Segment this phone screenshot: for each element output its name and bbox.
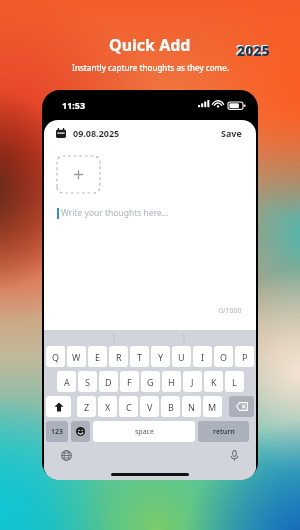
staticText: 2025: [237, 41, 270, 60]
staticText: Save: [221, 127, 242, 139]
staticText: 11:53: [62, 99, 86, 111]
staticText: U: [178, 351, 185, 363]
staticText: C: [126, 401, 132, 413]
button[interactable]: G: [141, 371, 160, 392]
button[interactable]: 2025: [236, 40, 269, 59]
button[interactable]: space: [93, 421, 195, 442]
button[interactable]: Dictate: [226, 447, 242, 463]
staticText: T: [137, 351, 143, 363]
staticText: B: [168, 401, 174, 413]
button[interactable]: N: [182, 396, 201, 417]
button[interactable]: W: [67, 346, 86, 367]
button[interactable]: I: [193, 346, 212, 367]
staticText: F: [127, 376, 132, 388]
button[interactable]: U: [172, 346, 191, 367]
staticText: Y: [158, 351, 164, 363]
staticText: P: [242, 351, 248, 363]
button[interactable]: T: [130, 346, 149, 367]
button[interactable]: Write your thoughts here...: [57, 207, 256, 219]
button[interactable]: M: [203, 396, 222, 417]
button[interactable]: L: [225, 371, 244, 392]
staticText: G: [147, 376, 154, 388]
staticText: return: [213, 427, 235, 437]
staticText: X: [105, 401, 111, 413]
staticText: L: [232, 376, 237, 388]
button[interactable]: J: [183, 371, 202, 392]
button[interactable]: F: [120, 371, 139, 392]
staticText: 2025: [236, 40, 269, 59]
button[interactable]: 123: [46, 421, 68, 442]
button[interactable]: V: [140, 396, 159, 417]
staticText: 123: [51, 427, 64, 437]
staticText: R: [116, 351, 122, 363]
staticText: M: [208, 401, 217, 413]
button[interactable]: Y: [151, 346, 170, 367]
staticText: 09.08.2025: [73, 127, 120, 139]
button[interactable]: D: [99, 371, 118, 392]
button[interactable]: O: [214, 346, 233, 367]
button[interactable]: B: [161, 396, 180, 417]
staticText: 0/1000: [219, 306, 242, 316]
staticText: D: [105, 376, 112, 388]
button[interactable]: return: [198, 421, 249, 442]
staticText: space: [135, 427, 154, 437]
button[interactable]: Add attachment: [57, 156, 100, 193]
button[interactable]: K: [204, 371, 223, 392]
staticText: Write your thoughts here...: [61, 207, 169, 219]
button[interactable]: Z: [77, 396, 96, 417]
button[interactable]: X: [98, 396, 117, 417]
button[interactable]: C: [119, 396, 138, 417]
button[interactable]: S: [78, 371, 97, 392]
button[interactable]: R: [109, 346, 128, 367]
button[interactable]: Shift: [46, 396, 71, 417]
staticText: O: [220, 351, 228, 363]
button[interactable]: Change language: [58, 447, 74, 463]
staticText: Quick Add: [109, 34, 191, 56]
staticText: I: [201, 351, 205, 363]
button[interactable]: Save: [219, 125, 244, 141]
button[interactable]: H: [162, 371, 181, 392]
staticText: N: [188, 401, 195, 413]
staticText: W: [72, 351, 81, 363]
button[interactable]: Emoji: [71, 421, 90, 442]
button[interactable]: P: [235, 346, 254, 367]
staticText: V: [147, 401, 153, 413]
staticText: Instantly capture thoughts as they come.: [72, 62, 229, 73]
staticText: Z: [84, 401, 90, 413]
button[interactable]: Backspace: [229, 396, 254, 417]
staticText: A: [64, 376, 70, 388]
staticText: H: [168, 376, 175, 388]
staticText: S: [85, 376, 90, 388]
button[interactable]: Q: [46, 346, 65, 367]
staticText: J: [191, 376, 194, 388]
button[interactable]: E: [88, 346, 107, 367]
staticText: Q: [52, 351, 60, 363]
staticText: K: [211, 376, 217, 388]
staticText: E: [95, 351, 101, 363]
button[interactable]: A: [57, 371, 76, 392]
